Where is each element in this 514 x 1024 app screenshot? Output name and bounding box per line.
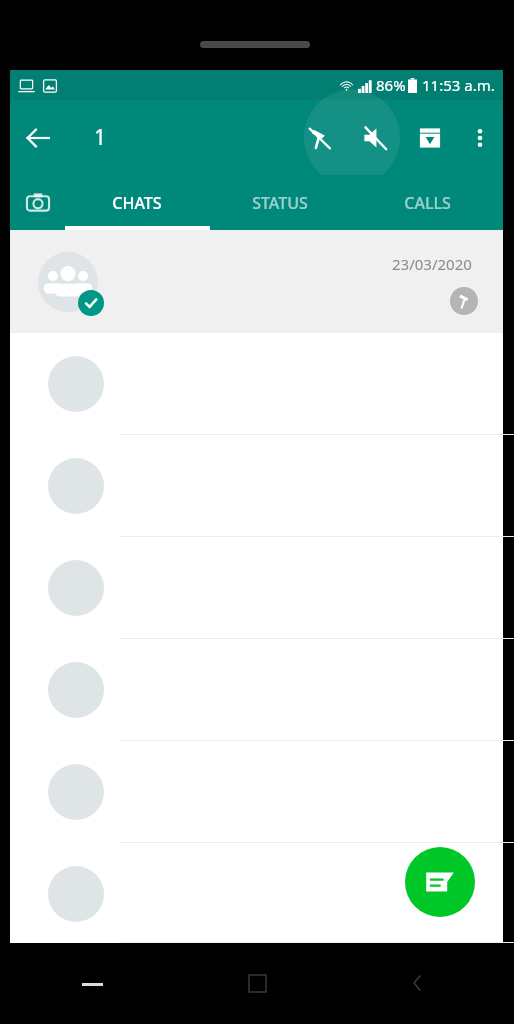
button[interactable]: More options bbox=[457, 115, 503, 161]
button[interactable]: CALLS bbox=[352, 175, 503, 230]
button[interactable]: STATUS bbox=[208, 175, 352, 230]
button[interactable]: New chat bbox=[405, 847, 475, 917]
button[interactable] bbox=[10, 843, 503, 943]
button[interactable]: Unpin bbox=[291, 110, 347, 166]
button[interactable] bbox=[10, 741, 503, 843]
button[interactable]: 23/03/2020 bbox=[10, 230, 503, 333]
staticText: 86% bbox=[376, 75, 406, 95]
button[interactable]: Back bbox=[10, 110, 66, 166]
button[interactable] bbox=[10, 537, 503, 639]
button[interactable] bbox=[10, 333, 503, 435]
staticText: 11:53 a.m. bbox=[422, 75, 495, 95]
button[interactable]: Archive bbox=[403, 111, 457, 165]
button[interactable] bbox=[10, 435, 503, 537]
staticText: CHATS bbox=[112, 192, 162, 214]
staticText: 23/03/2020 bbox=[392, 254, 472, 274]
button[interactable]: Back bbox=[400, 965, 436, 1001]
button[interactable]: Mute bbox=[347, 110, 403, 166]
staticText: 1 bbox=[94, 123, 107, 152]
button[interactable]: CHATS bbox=[65, 175, 208, 230]
staticText: STATUS bbox=[252, 192, 308, 214]
button[interactable]: Camera bbox=[10, 175, 65, 230]
button[interactable]: Recents bbox=[75, 967, 109, 1001]
button[interactable]: Home bbox=[239, 965, 275, 1001]
staticText: CALLS bbox=[404, 192, 451, 214]
button[interactable] bbox=[10, 639, 503, 741]
